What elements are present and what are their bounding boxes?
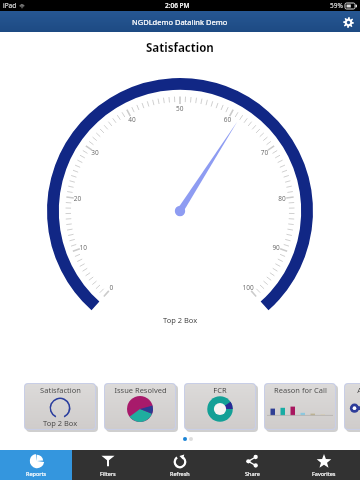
button[interactable]: Settings [340, 14, 356, 30]
staticText: Share [245, 470, 260, 477]
staticText: Top 2 Box [43, 418, 78, 428]
button[interactable]: Satisfaction [25, 384, 95, 429]
button[interactable]: Issue Resolved [105, 384, 175, 429]
staticText: Age [357, 385, 360, 395]
staticText: Reports [26, 470, 47, 477]
button[interactable]: Refresh [144, 450, 216, 480]
button[interactable]: Filters [72, 450, 144, 480]
button[interactable]: Favorites [288, 450, 360, 480]
staticText: Favorites [312, 470, 336, 477]
staticText: iPad [3, 1, 17, 10]
button[interactable]: Age [345, 384, 360, 429]
button[interactable]: FCR [185, 384, 255, 429]
staticText: Satisfaction [40, 385, 81, 395]
button[interactable]: Reason for Call [265, 384, 335, 429]
staticText: 2:06 PM [165, 1, 190, 10]
staticText: Filters [100, 470, 116, 477]
staticText: FCR [213, 385, 227, 395]
button[interactable]: Reports [0, 450, 72, 480]
staticText: NGDLdemo Datalink Demo [132, 17, 228, 27]
staticText: Top 2 Box [163, 315, 198, 325]
staticText: Issue Resolved [114, 385, 167, 395]
staticText: Refresh [170, 470, 190, 477]
button[interactable]: Share [216, 450, 288, 480]
staticText: Reason for Call [274, 385, 327, 395]
staticText: Satisfaction [146, 40, 214, 56]
staticText: 59% [330, 1, 343, 10]
